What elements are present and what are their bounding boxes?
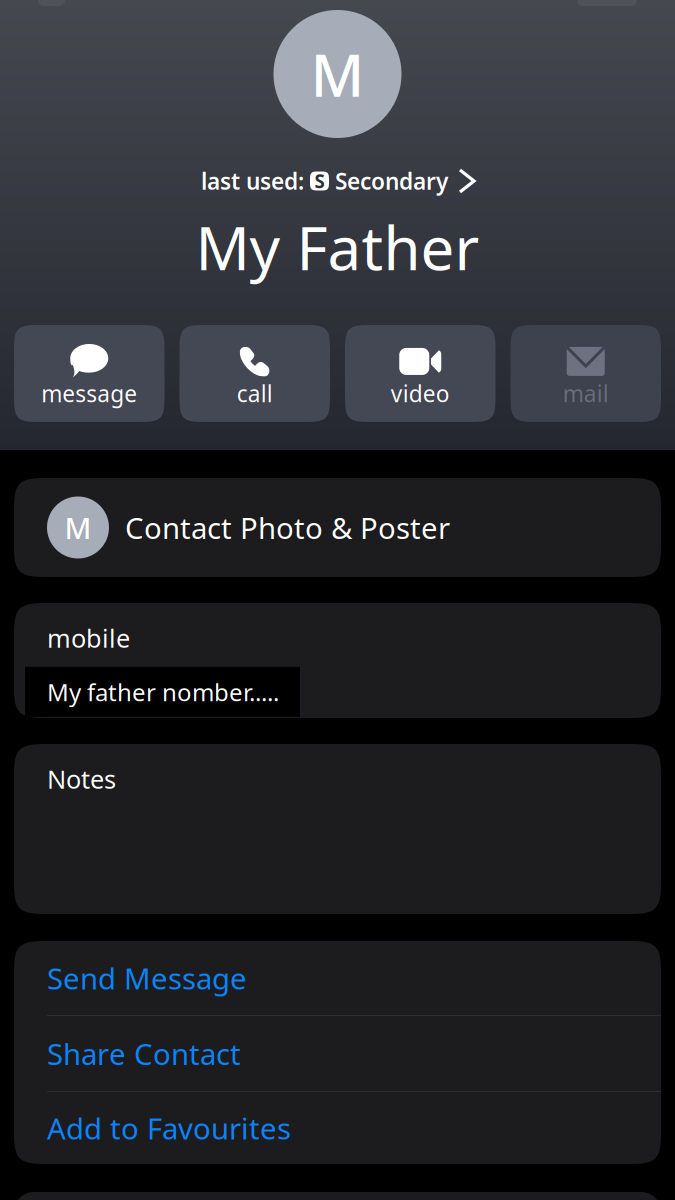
button[interactable]: M [14,478,661,577]
button[interactable]: Share Contact [14,1016,661,1092]
button[interactable]: mail [510,325,661,422]
staticText: My Father [195,207,479,287]
staticText: message [41,378,137,408]
staticText: M [310,35,364,113]
staticText: My father nomber..... [47,676,279,708]
staticText: Send Message [47,958,247,997]
staticText: Secondary [329,166,448,196]
button[interactable]: call [179,325,330,422]
button[interactable]: Add to Favourites [14,1092,661,1164]
staticText: mobile [47,621,130,655]
staticText: Notes [47,762,116,796]
button[interactable]: video [345,325,495,422]
staticText: video [391,378,450,408]
staticText: Share Contact [47,1034,241,1073]
button[interactable]: message [14,325,164,422]
button[interactable]: last used: [201,166,474,196]
staticText: M [64,508,91,547]
staticText: mail [563,378,609,408]
staticText: Add to Favourites [47,1108,291,1147]
staticText: last used: [201,166,310,196]
button[interactable]: mobile [14,603,661,718]
button[interactable]: Send Message [14,941,661,1016]
staticText: call [237,378,273,408]
staticText: S [314,169,324,193]
staticText: Contact Photo & Poster [125,508,450,547]
